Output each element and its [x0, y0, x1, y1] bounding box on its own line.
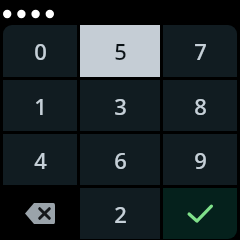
staticText: 1: [34, 91, 47, 121]
staticText: 3: [114, 91, 127, 121]
button[interactable]: 6: [80, 134, 160, 185]
staticText: 5: [114, 36, 127, 66]
button[interactable]: 8: [163, 80, 237, 131]
button[interactable]: Confirm: [163, 188, 237, 239]
button[interactable]: 0: [3, 25, 77, 77]
staticText: 7: [194, 36, 207, 66]
button[interactable]: 9: [163, 134, 237, 185]
staticText: 9: [194, 145, 207, 175]
button[interactable]: 1: [3, 80, 77, 131]
button[interactable]: 3: [80, 80, 160, 131]
button[interactable]: 5: [80, 25, 160, 77]
staticText: 4: [34, 145, 47, 175]
button[interactable]: 2: [80, 188, 160, 239]
staticText: 6: [114, 145, 127, 175]
button[interactable]: Backspace: [3, 188, 77, 239]
staticText: 2: [114, 199, 127, 229]
staticText: 8: [194, 91, 207, 121]
button[interactable]: 7: [163, 25, 237, 77]
staticText: 0: [34, 36, 47, 66]
button[interactable]: 4: [3, 134, 77, 185]
